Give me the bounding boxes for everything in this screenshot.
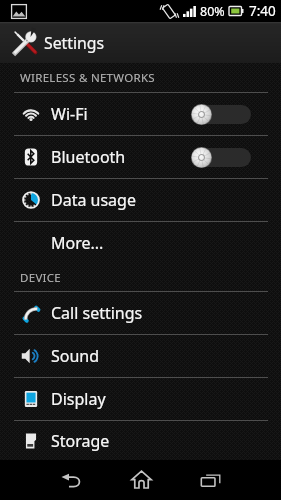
staticText: 7:40 [249, 2, 276, 20]
button[interactable]: Wi-Fi [0, 93, 281, 135]
staticText: Data usage [51, 189, 136, 211]
staticText: Call settings [51, 302, 143, 324]
button[interactable]: Sound [0, 335, 281, 377]
staticText: Display [51, 388, 106, 410]
staticText: WIRELESS & NETWORKS [20, 70, 155, 86]
button[interactable]: Toggle [191, 147, 251, 168]
staticText: Sound [51, 345, 100, 367]
button[interactable]: Storage [0, 421, 281, 460]
button[interactable]: Call settings [0, 292, 281, 334]
staticText: Bluetooth [51, 146, 126, 168]
staticText: 80% [200, 3, 225, 20]
button[interactable]: Bluetooth [0, 136, 281, 178]
button[interactable]: Back [36, 460, 106, 500]
staticText: Settings [44, 32, 105, 54]
staticText: Wi-Fi [51, 103, 88, 125]
button[interactable]: Display [0, 378, 281, 420]
button[interactable]: Toggle [191, 104, 251, 125]
staticText: DEVICE [20, 270, 62, 286]
button[interactable]: Home [106, 460, 176, 500]
button[interactable]: Recent apps [176, 460, 246, 500]
button[interactable]: More... [0, 222, 281, 264]
staticText: Storage [51, 430, 110, 452]
staticText: More... [51, 232, 104, 254]
button[interactable]: Data usage [0, 179, 281, 221]
